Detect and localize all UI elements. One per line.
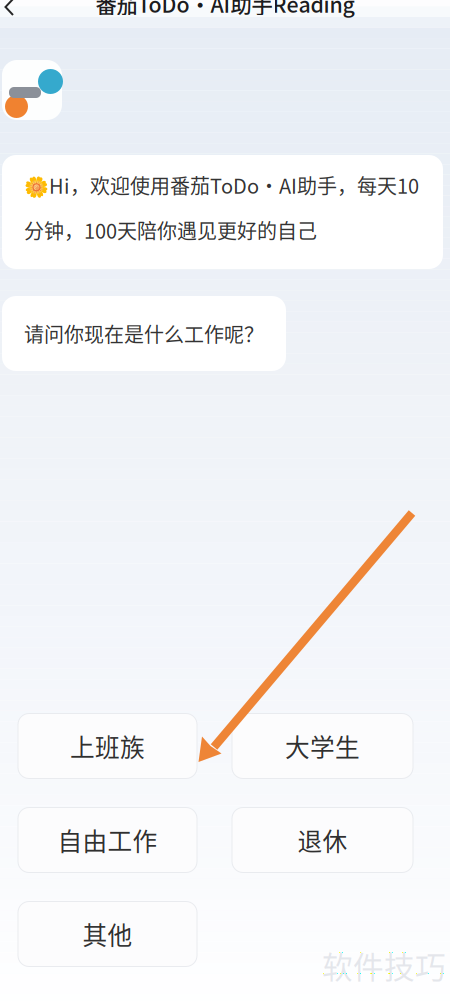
button[interactable]: 自由工作 <box>18 807 197 872</box>
button[interactable]: 退休 <box>232 807 413 872</box>
button[interactable]: 大学生 <box>232 713 413 778</box>
staticText: 自由工作 <box>57 822 157 858</box>
staticText: 番茄ToDo·AI助手Reading <box>95 0 354 19</box>
staticText: 软件技巧 <box>322 943 446 987</box>
button[interactable]: Back <box>0 0 33 16</box>
staticText: 分钟，100天陪你遇见更好的自己 <box>24 215 317 244</box>
staticText: 退休 <box>297 822 347 858</box>
staticText: 大学生 <box>285 728 360 764</box>
button[interactable]: 上班族 <box>18 713 197 778</box>
staticText: 其他 <box>82 916 132 952</box>
staticText: 🌼Hi，欢迎使用番茄ToDo·AI助手，每天10 <box>24 170 419 199</box>
staticText: 上班族 <box>70 728 145 764</box>
button[interactable]: 其他 <box>18 901 197 966</box>
staticText: 请问你现在是什么工作呢？ <box>24 319 264 348</box>
